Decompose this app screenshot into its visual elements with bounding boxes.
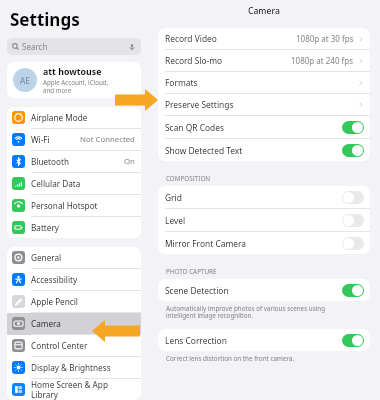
staticText: 1080p at 30 fps — [296, 33, 354, 44]
button[interactable] — [342, 284, 364, 297]
button[interactable]: Display & Brightness — [7, 357, 141, 378]
staticText: Scan QR Codes — [165, 122, 224, 133]
button[interactable]: AE — [7, 62, 141, 98]
staticText: Level — [165, 215, 186, 226]
staticText: On — [124, 156, 135, 167]
staticText: and more — [43, 86, 72, 94]
button[interactable]: Formats — [158, 72, 370, 93]
button[interactable]: General — [7, 247, 141, 268]
staticText: Lens Correction — [165, 335, 227, 346]
staticText: Camera — [248, 5, 280, 17]
staticText: Scene Detection — [165, 285, 229, 296]
button[interactable]: Personal Hotspot — [7, 195, 141, 216]
staticText: att howtouse — [43, 66, 102, 78]
staticText: Personal Hotspot — [31, 200, 98, 211]
button[interactable]: Control Center — [7, 335, 141, 356]
button[interactable]: Lens Correction — [158, 329, 370, 351]
staticText: General — [31, 252, 62, 263]
staticText: PHOTO CAPTURE — [166, 267, 217, 276]
staticText: Display & Brightness — [31, 362, 111, 373]
staticText: Cellular Data — [31, 178, 81, 189]
staticText: Airplane Mode — [31, 112, 88, 123]
button[interactable]: Home Screen & App Library — [7, 379, 141, 400]
button[interactable]: Mirror Front Camera — [158, 232, 370, 254]
staticText: Show Detected Text — [165, 145, 243, 156]
staticText: Bluetooth — [31, 156, 69, 167]
staticText: Preserve Settings — [165, 99, 234, 110]
staticText: Record Slo-mo — [165, 55, 223, 66]
button[interactable]: Cellular Data — [7, 173, 141, 194]
button[interactable]: Preserve Settings — [158, 94, 370, 115]
staticText: Correct lens distortion on the front cam… — [166, 354, 295, 363]
staticText: Apple Account, iCloud, — [43, 78, 109, 86]
button[interactable]: Wi-Fi — [7, 129, 141, 150]
button[interactable]: Apple Pencil — [7, 291, 141, 312]
button[interactable] — [342, 334, 364, 347]
button[interactable] — [342, 214, 364, 227]
button[interactable]: Camera — [7, 313, 141, 334]
button[interactable]: Scene Detection — [158, 279, 370, 301]
staticText: Search — [22, 41, 48, 52]
button[interactable]: Bluetooth — [7, 151, 141, 172]
button[interactable]: Record Slo-mo — [158, 50, 370, 71]
button[interactable]: Airplane Mode — [7, 107, 141, 128]
staticText: Apple Pencil — [31, 296, 78, 307]
button[interactable]: Grid — [158, 186, 370, 208]
button[interactable]: Accessibility — [7, 269, 141, 290]
staticText: Formats — [165, 77, 198, 88]
staticText: AE — [20, 75, 30, 86]
staticText: COMPOSITION — [166, 174, 211, 183]
button[interactable]: Show Detected Text — [158, 139, 370, 161]
staticText: Automatically improve photos of various … — [166, 304, 356, 320]
staticText: Record Video — [165, 33, 217, 44]
staticText: Grid — [165, 192, 182, 203]
button[interactable]: Scan QR Codes — [158, 116, 370, 138]
staticText: 1080p at 240 fps — [291, 55, 354, 66]
staticText: Camera — [31, 318, 61, 329]
staticText: Not Connected — [80, 134, 135, 145]
staticText: Battery — [31, 222, 60, 233]
button[interactable]: Level — [158, 209, 370, 231]
staticText: Mirror Front Camera — [165, 238, 246, 249]
staticText: Home Screen & App Library — [31, 379, 135, 400]
staticText: Accessibility — [31, 274, 78, 285]
button[interactable] — [342, 191, 364, 204]
staticText: Control Center — [31, 340, 88, 351]
button[interactable]: Battery — [7, 217, 141, 238]
staticText: Settings — [10, 8, 80, 31]
staticText: Wi-Fi — [31, 134, 50, 145]
button[interactable] — [342, 237, 364, 250]
button[interactable] — [342, 121, 364, 134]
button[interactable] — [342, 144, 364, 157]
button[interactable]: Search — [7, 38, 141, 55]
button[interactable]: Record Video — [158, 28, 370, 49]
